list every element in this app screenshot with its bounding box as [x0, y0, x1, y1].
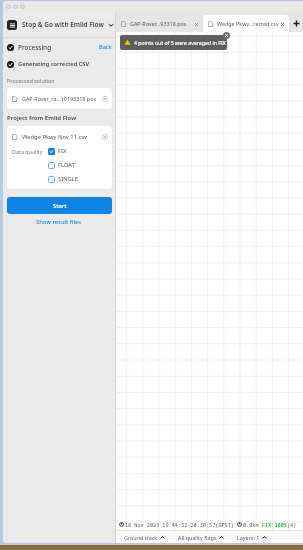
- button[interactable]: Close tab: [279, 21, 285, 27]
- staticText: Processed solution: [7, 77, 55, 84]
- button[interactable]: FLOAT: [48, 161, 75, 169]
- button[interactable]: Show result files: [34, 216, 84, 228]
- button[interactable]: Back: [99, 43, 112, 51]
- button[interactable]: Remove: [102, 134, 108, 140]
- button[interactable]: Dismiss: [223, 32, 230, 39]
- staticText: FLOAT: [58, 161, 75, 169]
- staticText: GAP-Rover...93318.pos: [130, 20, 187, 27]
- staticText: Wedge Pkwy...rected.csv: [217, 20, 279, 27]
- button[interactable]: 4 points out of 5 were averaged in FIX: [120, 35, 227, 50]
- button[interactable]: Close tab: [193, 21, 199, 27]
- staticText: Stop & Go with Emlid Flow: [22, 20, 104, 29]
- staticText: (4): [287, 521, 297, 528]
- button[interactable]: GAP-Rover_ra...10193318.pos: [7, 88, 112, 109]
- staticText: Layers: 1: [237, 534, 260, 541]
- staticText: 4 points out of 5 were averaged in FIX: [134, 39, 226, 46]
- staticText: SINGLE: [58, 175, 79, 183]
- staticText: GAP-Rover_ra...10193318.pos: [22, 95, 97, 102]
- button[interactable]: Start: [7, 197, 112, 214]
- button[interactable]: Processing: [3, 38, 115, 56]
- button[interactable]: Remove: [102, 96, 108, 102]
- staticText: Ground track: [124, 534, 158, 541]
- staticText: Project from Emlid Flow: [7, 114, 77, 122]
- staticText: Processing: [18, 43, 52, 52]
- staticText: 0.0km: [243, 521, 259, 528]
- staticText: FIX:100%: [262, 521, 287, 528]
- button[interactable]: Wedge Pkwy...rected.csv: [203, 15, 289, 32]
- button[interactable]: New tab: [289, 15, 303, 32]
- button[interactable]: Window control: [20, 4, 25, 9]
- button[interactable]: FIX: [48, 147, 67, 155]
- staticText: Generating corrected CSV: [18, 60, 90, 68]
- button[interactable]: SINGLE: [48, 175, 79, 183]
- button[interactable]: Window control: [6, 4, 11, 9]
- staticText: 18 Nov 2023 19:44:32-20:30:57(GPST): [125, 521, 234, 528]
- button[interactable]: Stop & Go with Emlid Flow: [3, 12, 115, 37]
- staticText: Wedge Pkwy Nov 11.csv: [22, 133, 88, 141]
- button[interactable]: GAP-Rover...93318.pos: [116, 15, 203, 32]
- button[interactable]: All quality flags: [178, 534, 224, 541]
- button[interactable]: Wedge Pkwy Nov 11.csv: [7, 126, 112, 147]
- button[interactable]: Ground track: [124, 534, 165, 541]
- staticText: All quality flags: [178, 534, 217, 541]
- staticText: Data quality: [12, 148, 43, 155]
- staticText: Start: [53, 202, 67, 210]
- button[interactable]: Window control: [13, 4, 18, 9]
- staticText: FIX: [58, 147, 67, 155]
- button[interactable]: Layers: 1: [237, 534, 267, 541]
